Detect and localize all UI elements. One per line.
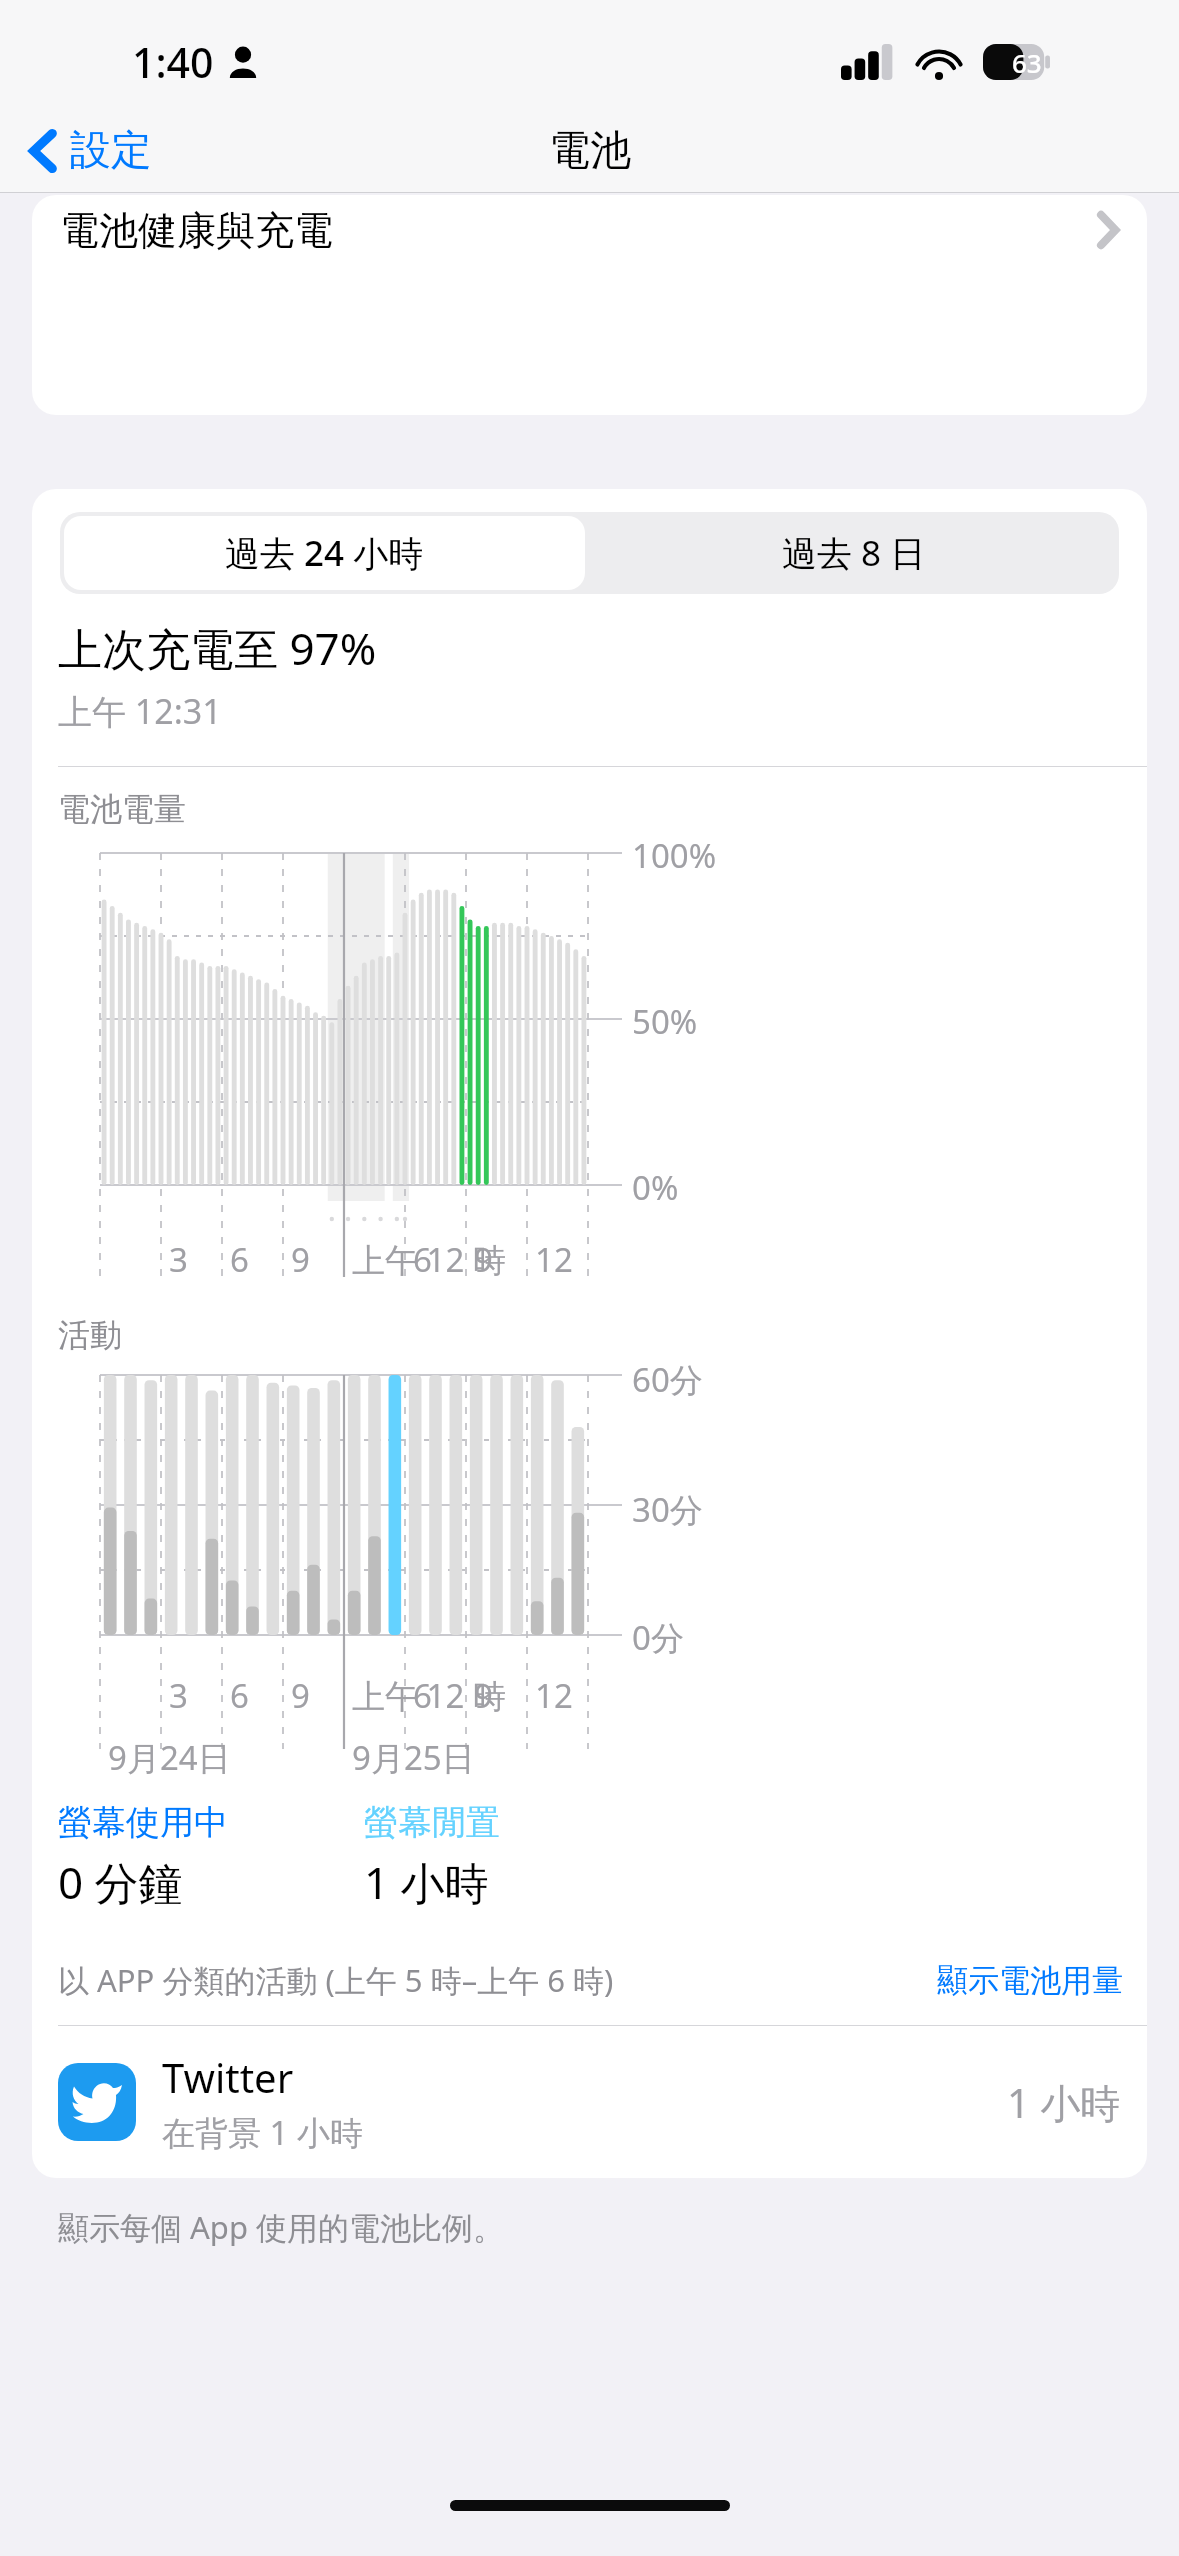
staticText: 60分	[632, 1357, 703, 1402]
staticText: 6	[230, 1673, 249, 1718]
staticText: 9	[474, 1237, 493, 1282]
other: 開啟	[1097, 211, 1119, 249]
staticText: 9	[474, 1673, 493, 1718]
staticText: 6	[413, 1673, 432, 1718]
button[interactable]: 過去 8 日	[589, 512, 1119, 594]
staticText: 100%	[632, 833, 717, 878]
button[interactable]: 過去 24 小時	[64, 516, 585, 590]
staticText: 電池	[549, 125, 631, 177]
staticText: 電池健康與充電	[60, 206, 333, 255]
staticText: 9	[291, 1673, 310, 1718]
button[interactable]: 顯示電池用量	[937, 1961, 1123, 2000]
staticText: 上午 12:31	[58, 688, 222, 734]
staticText: 12	[535, 1673, 573, 1718]
staticText: 9月25日	[352, 1735, 475, 1780]
staticText: Twitter	[162, 2050, 294, 2104]
staticText: 0 分鐘	[58, 1852, 183, 1912]
staticText: 活動	[58, 1315, 122, 1355]
staticText: 63	[1012, 45, 1042, 80]
staticText: 顯示每個 App 使用的電池比例。	[58, 2206, 505, 2248]
staticText: 過去 24 小時	[225, 529, 424, 577]
button[interactable]: 設定	[0, 117, 172, 185]
staticText: 9	[291, 1237, 310, 1282]
staticText: 1:40	[132, 34, 214, 90]
staticText: 6	[230, 1237, 249, 1282]
staticText: 6	[413, 1237, 432, 1282]
staticText: 50%	[632, 999, 698, 1044]
staticText: 0%	[632, 1165, 679, 1210]
staticText: 12	[535, 1237, 573, 1282]
staticText: 過去 8 日	[782, 529, 926, 577]
button[interactable]: 電池健康與充電	[32, 195, 1147, 287]
staticText: 30分	[632, 1487, 703, 1532]
staticText: 設定	[70, 125, 152, 177]
staticText: 1 小時	[364, 1852, 489, 1912]
staticText: 螢幕閒置	[364, 1801, 500, 1844]
staticText: 9月24日	[108, 1735, 231, 1780]
staticText: 上午 12 時	[352, 1237, 506, 1282]
staticText: 3	[169, 1673, 188, 1718]
staticText: 電池電量	[58, 789, 186, 829]
staticText: 上午 12 時	[352, 1673, 506, 1718]
staticText: 顯示電池用量	[937, 1961, 1123, 2000]
staticText: 以 APP 分類的活動 (上午 5 時–上午 6 時)	[58, 1959, 614, 2001]
staticText: 1 小時	[1007, 2075, 1121, 2130]
staticText: 螢幕使用中	[58, 1801, 228, 1844]
staticText: 0分	[632, 1615, 684, 1660]
staticText: 3	[169, 1237, 188, 1282]
staticText: 在背景 1 小時	[162, 2110, 364, 2155]
staticText: 上次充電至 97%	[58, 618, 377, 678]
button[interactable]: Twitter	[32, 2026, 1147, 2178]
